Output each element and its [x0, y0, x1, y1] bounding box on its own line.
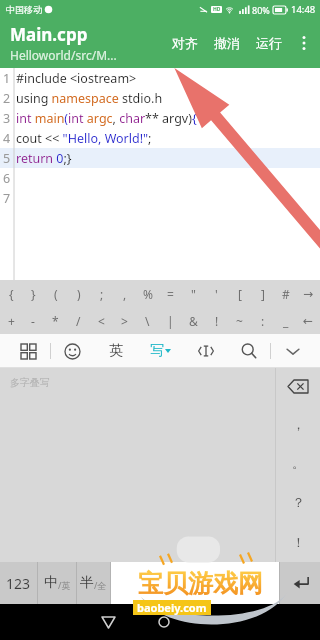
button[interactable]: [ — [228, 280, 251, 307]
button[interactable]: , — [113, 280, 136, 307]
button[interactable]: 123 — [0, 562, 37, 604]
button[interactable]: Back — [91, 605, 125, 639]
staticText: ] — [261, 286, 265, 302]
button[interactable]: _ — [274, 307, 297, 334]
staticText: 3 — [3, 110, 11, 127]
button[interactable]: * — [44, 307, 67, 334]
button[interactable]: ！ — [276, 522, 320, 562]
staticText: \ — [145, 313, 150, 329]
button[interactable]: 写 — [137, 334, 184, 368]
button[interactable]: # — [274, 280, 297, 307]
button[interactable]: \ — [136, 307, 159, 334]
staticText: ) — [77, 286, 81, 302]
button[interactable]: ← — [297, 307, 320, 334]
staticText: 5 — [3, 150, 11, 167]
button[interactable]: 7 — [0, 188, 320, 208]
button[interactable]: 4 — [0, 128, 320, 148]
staticText: HD — [213, 6, 221, 13]
staticText: ( — [54, 286, 58, 302]
staticText: _ — [283, 313, 289, 329]
button[interactable]: = — [159, 280, 182, 307]
button[interactable]: 1 — [0, 68, 320, 88]
staticText: /英 — [58, 579, 71, 591]
button[interactable]: 英 — [94, 334, 137, 368]
staticText: 7 — [3, 190, 11, 207]
staticText: 123 — [6, 574, 31, 593]
staticText: 。 — [292, 455, 305, 471]
staticText: 半 — [80, 574, 94, 592]
staticText: = — [167, 286, 174, 302]
button[interactable]: 半 — [77, 562, 110, 604]
staticText: " — [191, 286, 196, 302]
button[interactable]: ' — [205, 280, 228, 307]
button[interactable]: | — [159, 307, 182, 334]
staticText: % — [143, 286, 153, 302]
staticText: cout << "Hello, World!"; — [16, 130, 152, 147]
button[interactable]: Home — [147, 605, 181, 639]
button[interactable]: > — [113, 307, 136, 334]
button[interactable]: Keyboard layouts — [6, 334, 50, 368]
staticText: | — [167, 313, 174, 329]
staticText: /全 — [94, 579, 107, 591]
button[interactable]: 运行 — [248, 25, 290, 61]
staticText: : — [261, 313, 265, 329]
button[interactable]: ？ — [276, 482, 320, 522]
button[interactable]: ， — [276, 404, 320, 443]
button[interactable]: Enter — [280, 562, 320, 604]
button[interactable]: ; — [90, 280, 113, 307]
button[interactable]: → — [297, 280, 320, 307]
button[interactable]: Backspace — [276, 368, 320, 404]
staticText: 4 — [3, 130, 11, 147]
staticText: < — [98, 313, 105, 329]
staticText: 写 — [150, 342, 164, 360]
button[interactable]: 2 — [0, 88, 320, 108]
button[interactable]: More options — [290, 21, 318, 65]
button[interactable]: / — [67, 307, 90, 334]
button[interactable]: } — [22, 280, 44, 307]
button[interactable]: ] — [251, 280, 274, 307]
staticText: 中 — [44, 574, 58, 592]
staticText: / — [76, 313, 81, 329]
staticText: { — [9, 286, 14, 302]
button[interactable]: { — [0, 280, 22, 307]
staticText: using namespace stdio.h — [16, 90, 163, 107]
button[interactable]: % — [136, 280, 159, 307]
button[interactable]: & — [182, 307, 205, 334]
staticText: ~ — [236, 313, 243, 329]
button[interactable]: Space — [111, 562, 279, 604]
staticText: 对齐 — [172, 35, 198, 51]
staticText: 14:48 — [291, 3, 316, 16]
staticText: ! — [215, 313, 219, 329]
button[interactable]: Move cursor — [184, 334, 227, 368]
staticText: ← — [303, 314, 314, 328]
staticText: 2 — [3, 90, 11, 107]
staticText: + — [8, 313, 15, 329]
button[interactable]: 撤消 — [206, 25, 248, 61]
button[interactable]: ! — [205, 307, 228, 334]
button[interactable]: ( — [44, 280, 67, 307]
button[interactable]: + — [0, 307, 22, 334]
staticText: Helloworld/src/M... — [10, 47, 117, 63]
button[interactable]: 6 — [0, 168, 320, 188]
button[interactable]: 。 — [276, 443, 320, 482]
button[interactable]: Emoji — [51, 334, 94, 368]
staticText: baobeiy.com — [137, 600, 207, 615]
button[interactable]: 3 — [0, 108, 320, 128]
button[interactable]: : — [251, 307, 274, 334]
staticText: int main(int argc, char** argv){ — [16, 110, 197, 127]
button[interactable]: Hide keyboard — [271, 334, 314, 368]
staticText: 1 — [3, 70, 11, 87]
button[interactable]: 对齐 — [164, 25, 206, 61]
staticText: ？ — [292, 494, 305, 510]
staticText: 宝贝游戏网 — [138, 568, 263, 599]
button[interactable]: ~ — [228, 307, 251, 334]
staticText: #include <iostream> — [16, 70, 137, 87]
button[interactable]: 中 — [38, 562, 76, 604]
button[interactable]: - — [22, 307, 44, 334]
staticText: * — [52, 313, 59, 329]
button[interactable]: 5 — [0, 148, 320, 168]
button[interactable]: ) — [67, 280, 90, 307]
button[interactable]: " — [182, 280, 205, 307]
button[interactable]: < — [90, 307, 113, 334]
button[interactable]: Search — [227, 334, 270, 368]
